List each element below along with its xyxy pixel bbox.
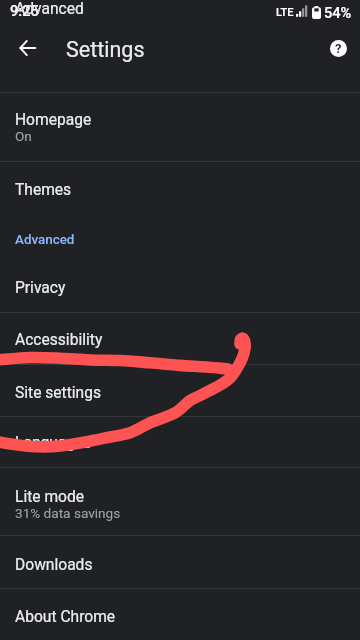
staticText: On <box>15 128 32 144</box>
staticText: Homepage <box>15 111 92 129</box>
button[interactable]: Lite mode <box>0 468 360 535</box>
staticText: Advanced <box>15 0 84 18</box>
staticText: 9:25 <box>10 2 39 19</box>
staticText: Lite mode <box>15 488 85 506</box>
button[interactable]: Homepage <box>0 93 360 161</box>
button[interactable]: Accessibility <box>0 313 360 364</box>
button[interactable]: Site settings <box>0 365 360 416</box>
staticText: Site settings <box>15 384 102 402</box>
staticText: Accessibility <box>15 331 103 349</box>
staticText: 54% <box>324 4 352 21</box>
staticText: Advanced <box>15 232 75 248</box>
staticText: Downloads <box>15 556 93 574</box>
button[interactable]: Settings <box>66 37 145 62</box>
button[interactable]: Back <box>9 30 45 66</box>
staticText: Themes <box>15 181 72 199</box>
button[interactable]: Help <box>320 30 356 66</box>
staticText: About Chrome <box>15 608 116 626</box>
staticText: ? <box>335 41 342 56</box>
button[interactable]: Themes <box>0 162 360 213</box>
button[interactable]: Downloads <box>0 536 360 588</box>
staticText: Languages <box>15 434 92 452</box>
staticText: Privacy <box>15 279 66 297</box>
staticText: 31% data savings <box>15 505 121 521</box>
button[interactable]: About Chrome <box>0 589 360 640</box>
staticText: LTE <box>276 6 294 19</box>
button[interactable]: Privacy <box>0 262 360 312</box>
button[interactable]: Languages <box>0 417 360 467</box>
